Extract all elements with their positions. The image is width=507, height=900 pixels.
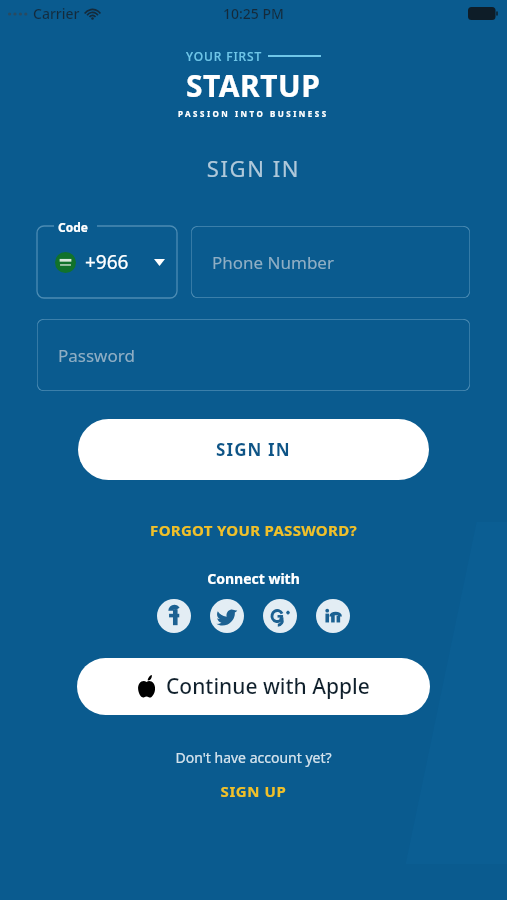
staticText: Connect with [0,569,507,588]
staticText: Password [58,344,135,367]
button[interactable]: Twitter [210,599,244,633]
button[interactable]: Select country code [37,226,177,298]
button[interactable]: Password [37,319,470,391]
button[interactable]: SIGN IN [78,419,429,480]
staticText: Code [58,219,88,235]
staticText: SIGN IN [0,153,507,183]
staticText: Continue with Apple [166,672,370,701]
button[interactable]: Phone Number [191,226,470,298]
button[interactable]: Facebook [157,599,191,633]
staticText: Don't have account yet? [0,748,507,767]
button[interactable]: Continue with Apple [77,658,430,715]
staticText: +966 [85,249,129,275]
staticText: YOUR FIRST [186,48,263,64]
button[interactable]: LinkedIn [316,599,350,633]
staticText: Phone Number [212,251,334,274]
button[interactable]: FORGOT YOUR PASSWORD? [0,518,507,542]
button[interactable]: SIGN UP [0,779,507,803]
staticText: STARTUP [186,65,321,106]
staticText: Carrier [33,4,80,23]
button[interactable]: Google Plus [263,599,297,633]
staticText: SIGN IN [216,438,291,461]
staticText: PASSION INTO BUSINESS [178,108,329,119]
staticText: 10:25 PM [223,4,284,23]
